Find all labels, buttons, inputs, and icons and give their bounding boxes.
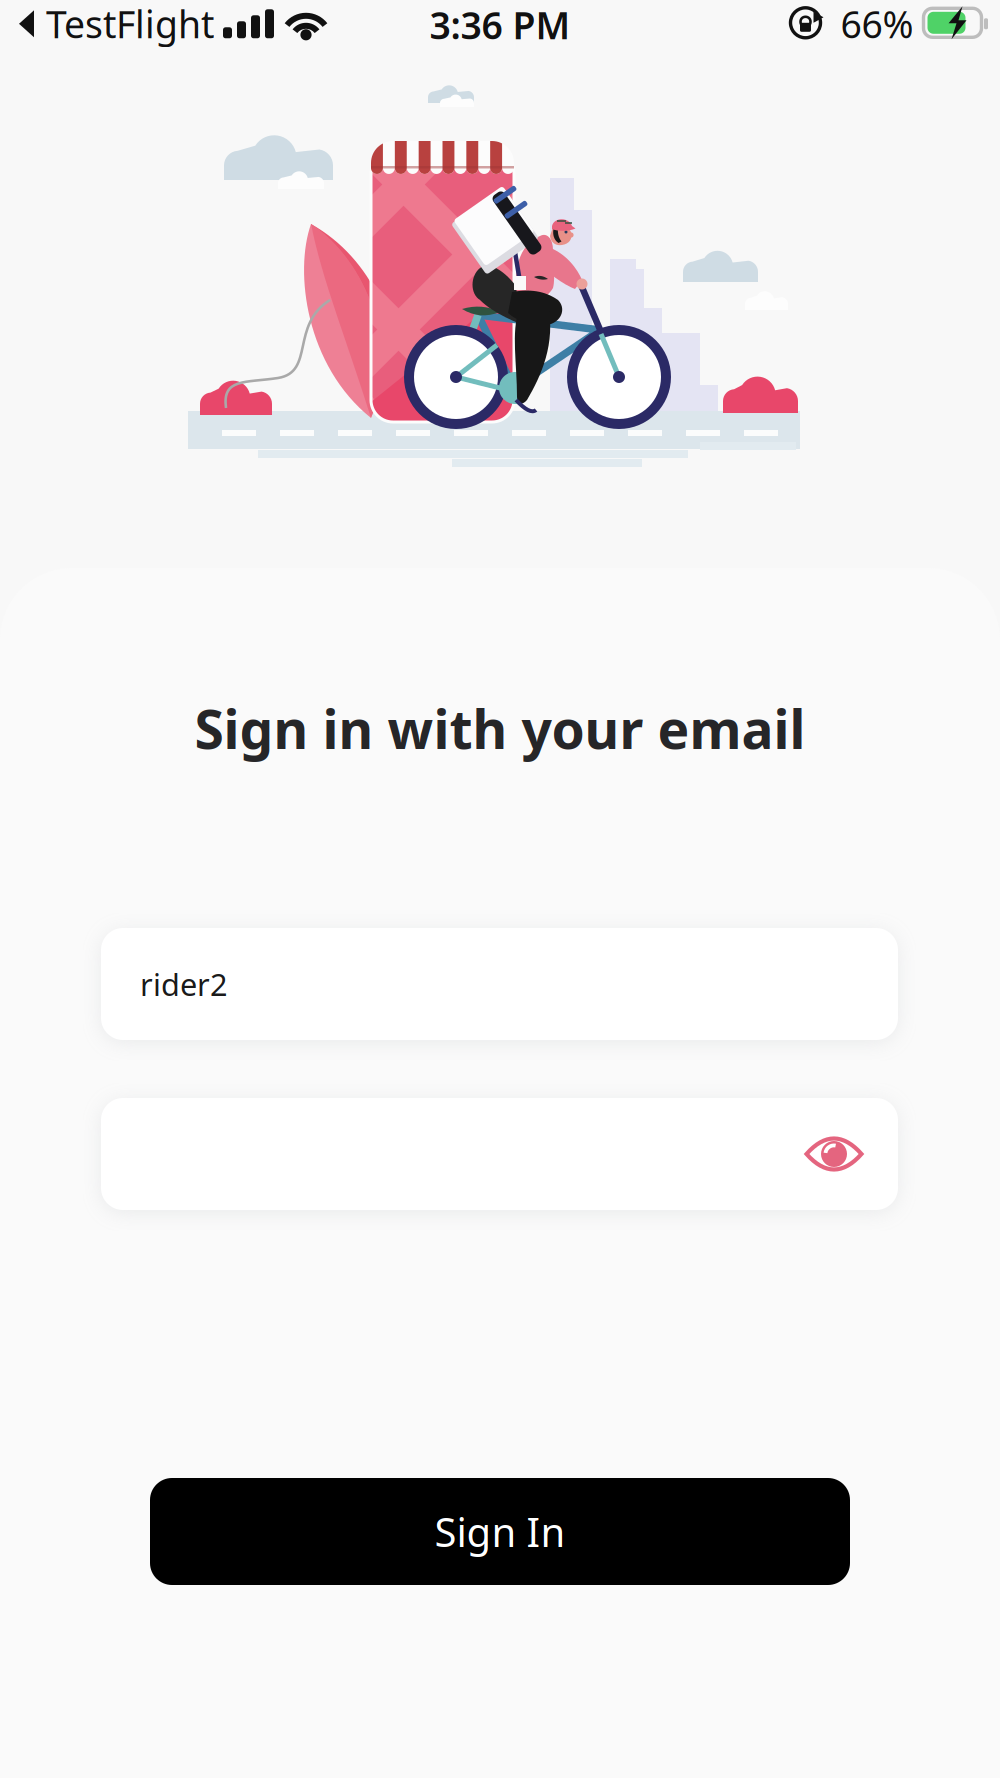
staticText: rider2 <box>140 964 228 1004</box>
button[interactable]: Sign In <box>150 1478 850 1585</box>
staticText: Sign in with your email <box>194 693 805 764</box>
staticText: 66% <box>830 0 913 49</box>
staticText: Sign In <box>434 1505 565 1558</box>
staticText: TestFlight <box>36 0 214 49</box>
button[interactable]: Show password <box>804 1134 864 1174</box>
staticText: 3:36 PM <box>429 0 570 50</box>
button[interactable]: rider2 <box>101 928 898 1040</box>
